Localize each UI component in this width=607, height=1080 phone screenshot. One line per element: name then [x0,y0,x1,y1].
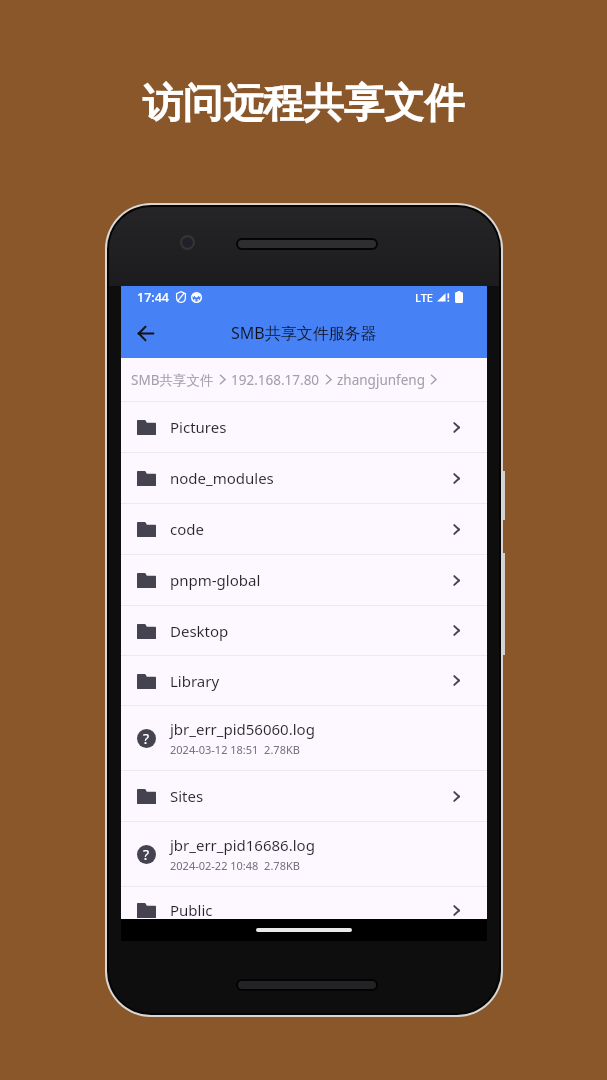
button[interactable]: Sites [121,770,487,821]
staticText: 17:44 [137,289,170,306]
staticText: jbr_err_pid56060.log [170,719,315,739]
staticText: ? [143,845,150,864]
staticText: 2024-02-22 10:48 2.78KB [170,858,300,873]
button[interactable]: ? [121,705,487,770]
staticText: SMB共享文件 [131,371,214,389]
staticText: jbr_err_pid16686.log [170,835,315,855]
staticText: ? [143,729,150,748]
staticText: 访问远程共享文件 [0,78,607,129]
staticText: LTE [415,290,433,305]
button[interactable]: ? [121,821,487,886]
staticText: code [170,519,204,539]
button[interactable]: Desktop [121,605,487,655]
button[interactable]: Pictures [121,401,487,452]
staticText: 2024-03-12 18:51 2.78KB [170,742,300,757]
button[interactable]: code [121,503,487,554]
button[interactable]: Public [121,886,487,919]
staticText: Desktop [170,621,229,641]
staticText: node_modules [170,468,274,488]
staticText: Library [170,671,220,691]
staticText: zhangjunfeng [337,371,425,389]
button[interactable]: node_modules [121,452,487,503]
button[interactable]: pnpm-global [121,554,487,605]
button[interactable]: Library [121,655,487,705]
staticText: SMB共享文件服务器 [231,322,377,344]
button[interactable]: Back [129,316,163,350]
staticText: 192.168.17.80 [231,371,320,389]
staticText: pnpm-global [170,570,261,590]
staticText: Sites [170,786,204,806]
staticText: Public [170,900,213,919]
staticText: Pictures [170,417,227,437]
